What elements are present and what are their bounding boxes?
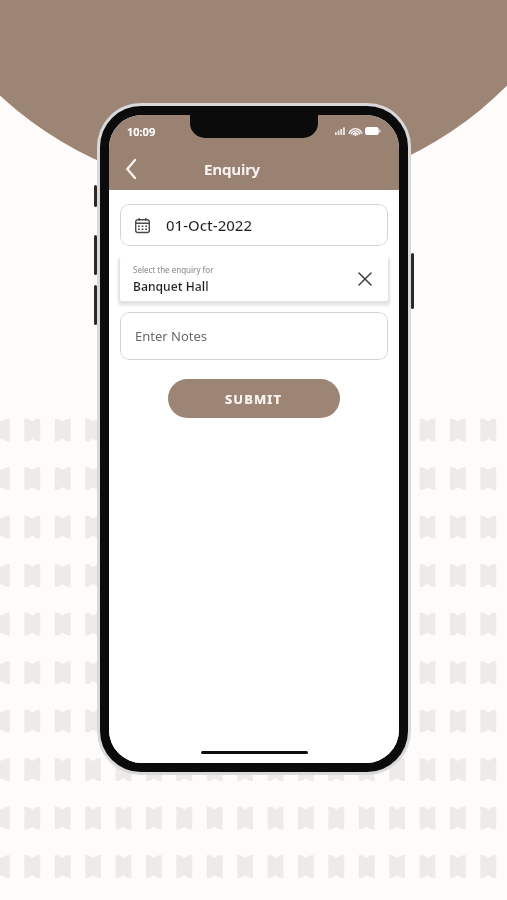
- button[interactable]: Back: [109, 148, 153, 190]
- button[interactable]: Enter Notes: [120, 312, 388, 360]
- staticText: Enter Notes: [135, 327, 208, 345]
- staticText: 10:09: [127, 124, 156, 139]
- staticText: SUBMIT: [225, 390, 283, 408]
- staticText: Select the enquiry for: [133, 264, 214, 275]
- button[interactable]: SUBMIT: [168, 379, 340, 418]
- staticText: Banquet Hall: [133, 278, 209, 294]
- button[interactable]: Select the enquiry for: [120, 257, 388, 301]
- staticText: 01-Oct-2022: [166, 215, 252, 235]
- button[interactable]: 01-Oct-2022: [120, 204, 388, 246]
- button[interactable]: Clear selection: [352, 266, 378, 292]
- staticText: Enquiry: [131, 159, 333, 179]
